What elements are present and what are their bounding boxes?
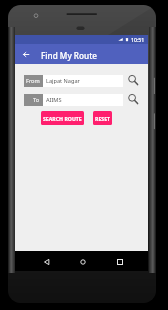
button[interactable]: Back bbox=[37, 253, 55, 270]
button[interactable]: Home bbox=[74, 253, 92, 270]
button[interactable]: Recents bbox=[111, 253, 129, 270]
button[interactable]: RESET bbox=[93, 111, 112, 125]
staticText: From bbox=[26, 77, 40, 85]
button[interactable]: To bbox=[24, 94, 43, 106]
staticText: Find My Route bbox=[41, 50, 97, 61]
button[interactable]: Search bbox=[123, 94, 145, 106]
staticText: AIIMS bbox=[46, 96, 62, 104]
staticText: 10:51 bbox=[131, 36, 145, 43]
staticText: To bbox=[33, 96, 40, 104]
staticText: SEARCH ROUTE bbox=[43, 115, 82, 122]
button[interactable]: Back bbox=[17, 47, 34, 61]
button[interactable]: SEARCH ROUTE bbox=[41, 111, 84, 125]
staticText: RESET bbox=[95, 115, 111, 122]
staticText: Lajpat Nagar bbox=[46, 77, 80, 85]
button[interactable]: From bbox=[24, 75, 43, 87]
button[interactable]: Search bbox=[123, 75, 145, 87]
